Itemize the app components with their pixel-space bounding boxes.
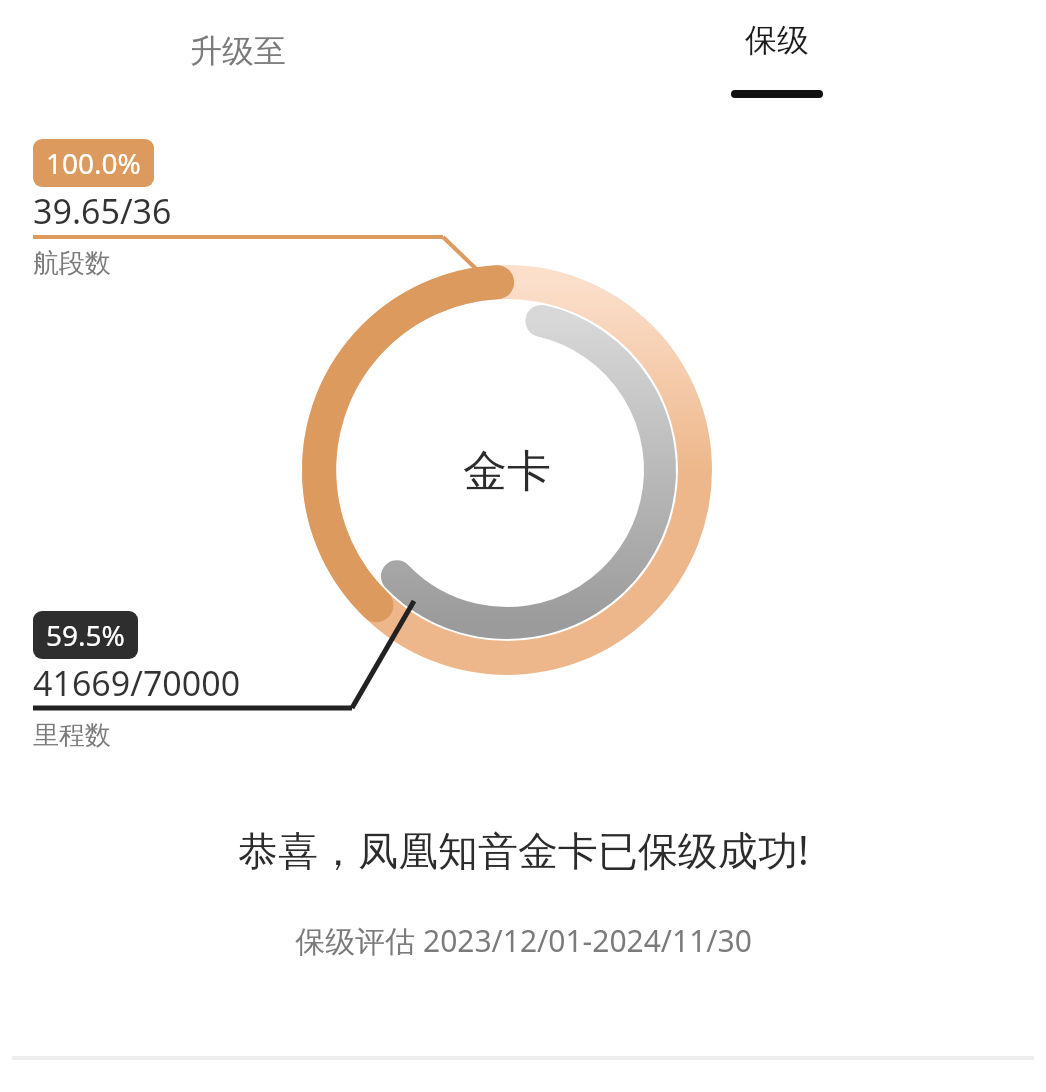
button[interactable]: 升级至 bbox=[118, 14, 358, 88]
staticText: 保级 bbox=[745, 20, 809, 60]
staticText: 金卡 bbox=[463, 444, 551, 499]
staticText: 恭喜，凤凰知音金卡已保级成功! bbox=[238, 822, 809, 877]
staticText: 保级评估 2023/12/01-2024/11/30 bbox=[295, 920, 752, 961]
staticText: 升级至 bbox=[190, 31, 286, 71]
button[interactable]: 保级 bbox=[657, 14, 897, 122]
staticText: 39.65/36 bbox=[33, 188, 172, 234]
staticText: 航段数 bbox=[33, 247, 111, 280]
staticText: 里程数 bbox=[33, 719, 111, 752]
staticText: 100.0% bbox=[46, 144, 141, 182]
staticText: 59.5% bbox=[46, 616, 125, 654]
staticText: 41669/70000 bbox=[33, 660, 241, 706]
